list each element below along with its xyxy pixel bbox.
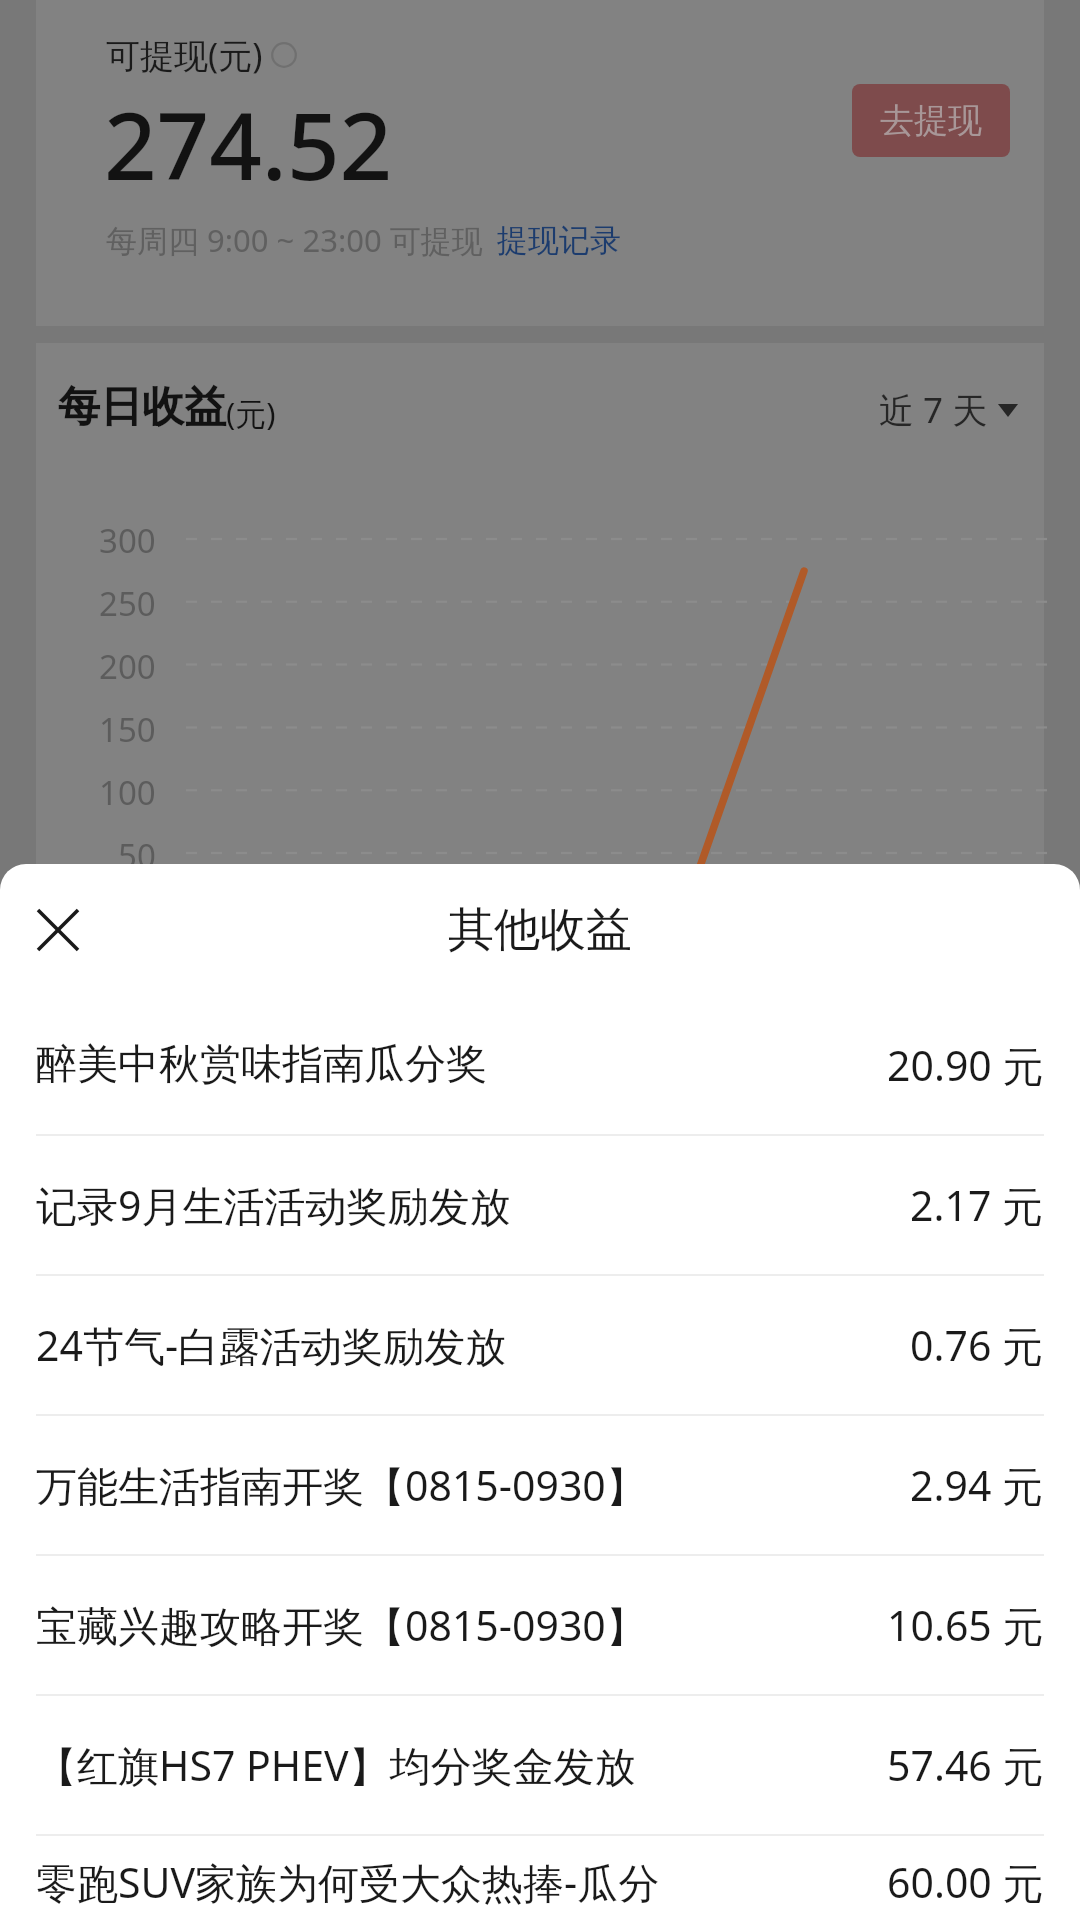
staticText: 可提现(元) [106,32,263,78]
button[interactable]: 宝藏兴趣攻略开奖【0815-0930】 [0,1556,1080,1694]
staticText: 万能生活指南开奖【0815-0930】 [36,1457,647,1513]
staticText: 150 [99,707,156,752]
staticText: 10.65 元 [887,1597,1044,1653]
staticText: 每日收益 [58,381,226,434]
button[interactable]: Close [26,898,90,962]
button[interactable]: 提现记录 [497,221,621,260]
staticText: 2.94 元 [910,1457,1044,1513]
staticText: 近 7 天 [879,386,988,434]
button[interactable]: 去提现 [852,84,1010,157]
button[interactable]: 近 7 天 [879,386,1018,434]
staticText: 2.17 元 [910,1177,1044,1233]
staticText: 宝藏兴趣攻略开奖【0815-0930】 [36,1597,647,1653]
button[interactable]: 万能生活指南开奖【0815-0930】 [0,1416,1080,1554]
staticText: 去提现 [880,99,982,142]
staticText: 提现记录 [497,221,621,260]
staticText: 100 [99,770,156,815]
staticText: 每周四 9:00 ~ 23:00 可提现 [106,219,483,261]
staticText: 300 [99,518,156,563]
staticText: 57.46 元 [887,1737,1044,1793]
button[interactable]: 24节气-白露活动奖励发放 [0,1276,1080,1414]
button[interactable]: 记录9月生活活动奖励发放 [0,1136,1080,1274]
staticText: 60.00 元 [887,1854,1044,1910]
staticText: 274.52 [104,82,393,207]
button[interactable]: 零跑SUV家族为何受大众热捧-瓜分 [0,1836,1080,1928]
staticText: 24节气-白露活动奖励发放 [36,1317,507,1373]
staticText: 零跑SUV家族为何受大众热捧-瓜分 [36,1854,660,1910]
staticText: 醉美中秋赏味指南瓜分奖 [36,1039,487,1091]
staticText: 50 [118,833,156,878]
staticText: 20.90 元 [887,1037,1044,1093]
button[interactable]: 【红旗HS7 PHEV】均分奖金发放 [0,1696,1080,1834]
staticText: 其他收益 [448,901,632,959]
staticText: 250 [99,581,156,626]
staticText: 【红旗HS7 PHEV】均分奖金发放 [36,1737,636,1793]
staticText: 记录9月生活活动奖励发放 [36,1177,511,1233]
button[interactable]: 醉美中秋赏味指南瓜分奖 [0,996,1080,1134]
staticText: 0.76 元 [910,1317,1044,1373]
staticText: (元) [226,392,276,434]
staticText: 200 [99,644,156,689]
